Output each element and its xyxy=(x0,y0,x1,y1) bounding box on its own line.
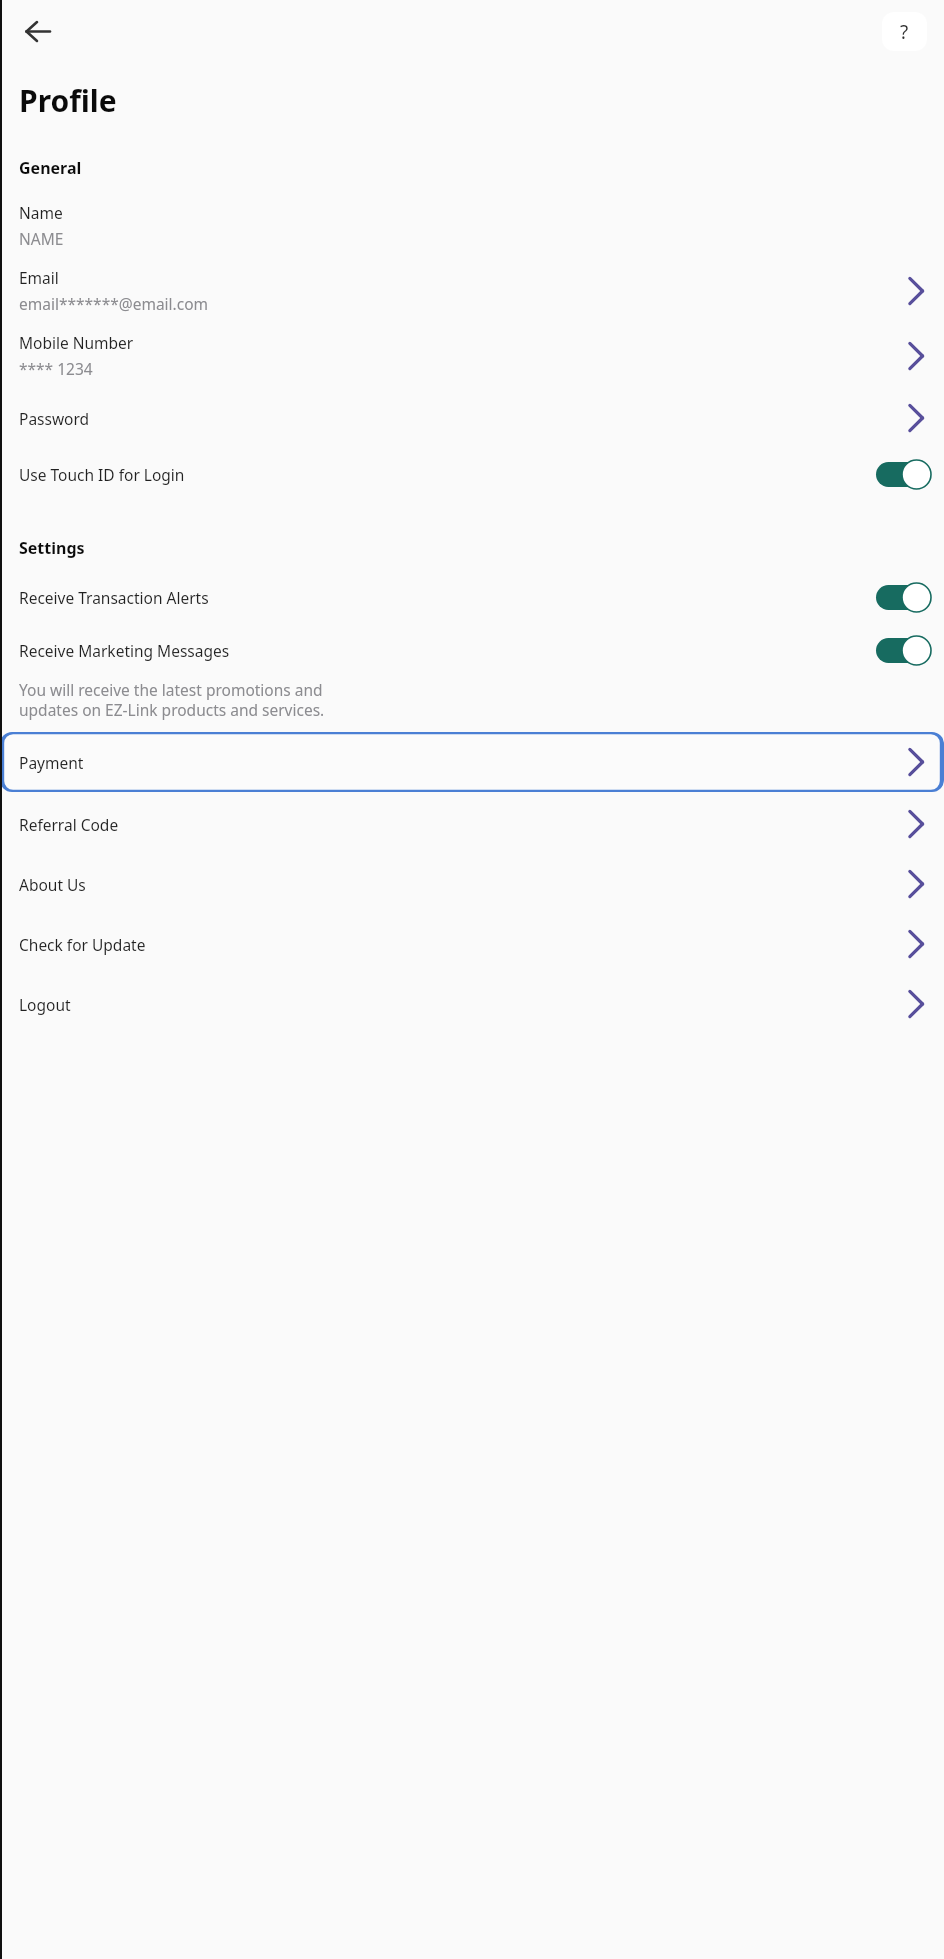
button[interactable]: Payment xyxy=(0,732,944,792)
button[interactable]: Mobile Number xyxy=(0,323,944,388)
staticText: Use Touch ID for Login xyxy=(19,464,876,485)
staticText: NAME xyxy=(19,228,64,249)
button[interactable]: Use Touch ID for Login xyxy=(0,448,944,501)
staticText: Receive Marketing Messages xyxy=(19,640,876,661)
button[interactable]: Name xyxy=(0,193,944,258)
staticText: Password xyxy=(19,408,905,429)
button[interactable]: Receive Transaction Alerts xyxy=(0,571,944,624)
staticText: Payment xyxy=(19,752,905,773)
staticText: Logout xyxy=(19,994,905,1015)
staticText: General xyxy=(19,157,82,179)
staticText: About Us xyxy=(19,874,905,895)
staticText: Email xyxy=(19,267,59,288)
staticText: Check for Update xyxy=(19,934,905,955)
button[interactable]: About Us xyxy=(0,854,944,914)
staticText: You will receive the latest promotions a… xyxy=(19,679,325,720)
staticText: **** 1234 xyxy=(19,358,93,379)
staticText: Settings xyxy=(19,537,85,559)
staticText: ? xyxy=(900,19,909,45)
staticText: Mobile Number xyxy=(19,332,134,353)
button[interactable]: Back xyxy=(15,9,59,53)
button[interactable]: Password xyxy=(0,388,944,448)
button[interactable]: Logout xyxy=(0,974,944,1034)
button[interactable]: Help xyxy=(882,12,927,51)
staticText: email*******@email.com xyxy=(19,293,209,314)
staticText: Profile xyxy=(19,80,117,121)
staticText: Name xyxy=(19,202,63,223)
button[interactable]: Email xyxy=(0,258,944,323)
staticText: Referral Code xyxy=(19,814,905,835)
staticText: Receive Transaction Alerts xyxy=(19,587,876,608)
button[interactable]: Referral Code xyxy=(0,794,944,854)
button[interactable]: Receive Marketing Messages xyxy=(0,624,944,677)
button[interactable]: Check for Update xyxy=(0,914,944,974)
